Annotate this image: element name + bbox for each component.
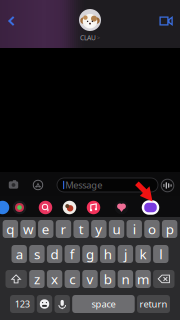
button[interactable]: u: [109, 220, 124, 238]
staticText: return: [139, 298, 167, 310]
staticText: m: [137, 270, 149, 288]
staticText: c: [69, 270, 75, 288]
button[interactable]: Images: [36, 198, 55, 217]
button[interactable]: r: [56, 220, 71, 238]
button[interactable]: Message: [57, 178, 158, 192]
staticText: u: [112, 220, 120, 238]
button[interactable]: c: [65, 270, 80, 288]
button[interactable]: space: [72, 295, 135, 313]
button[interactable]: m: [135, 270, 151, 288]
staticText: g: [86, 245, 94, 263]
button[interactable]: b: [100, 270, 115, 288]
staticText: o: [148, 220, 156, 238]
button[interactable]: t: [73, 220, 89, 238]
button[interactable]: 123: [10, 295, 34, 313]
button[interactable]: y: [91, 220, 106, 238]
staticText: 123: [15, 298, 30, 310]
staticText: a: [16, 245, 23, 263]
staticText: space: [91, 298, 115, 310]
button[interactable]: Emoji: [37, 295, 52, 313]
staticText: h: [104, 245, 112, 263]
staticText: r: [60, 220, 66, 238]
button[interactable]: Memoji: [10, 198, 29, 217]
button[interactable]: Selected app: [142, 200, 159, 215]
button[interactable]: Audio message: [160, 178, 174, 192]
staticText: v: [86, 270, 93, 288]
staticText: x: [51, 270, 58, 288]
button[interactable]: Apps: [33, 180, 43, 190]
staticText: p: [166, 220, 174, 238]
staticText: j: [124, 245, 127, 263]
button[interactable]: e: [38, 220, 53, 238]
button[interactable]: q: [3, 220, 18, 238]
button[interactable]: z: [29, 270, 45, 288]
button[interactable]: x: [47, 270, 62, 288]
staticText: Message: [65, 179, 102, 191]
button[interactable]: CLAU: [60, 9, 120, 42]
staticText: l: [159, 245, 162, 263]
button[interactable]: k: [135, 245, 151, 263]
staticText: k: [140, 245, 147, 263]
staticText: s: [34, 245, 40, 263]
button[interactable]: p: [162, 220, 177, 238]
button[interactable]: a: [11, 245, 27, 263]
button[interactable]: Delete: [153, 270, 174, 288]
button[interactable]: g: [82, 245, 98, 263]
button[interactable]: o: [144, 220, 160, 238]
staticText: >: [97, 34, 100, 41]
staticText: q: [6, 220, 14, 238]
button[interactable]: h: [100, 245, 115, 263]
staticText: y: [95, 220, 102, 238]
button[interactable]: Back: [2, 13, 21, 29]
staticText: i: [133, 220, 136, 238]
staticText: w: [23, 220, 33, 238]
button[interactable]: Camera: [8, 180, 18, 189]
staticText: f: [70, 245, 75, 263]
button[interactable]: n: [118, 270, 133, 288]
staticText: b: [104, 270, 112, 288]
button[interactable]: f: [65, 245, 80, 263]
staticText: z: [34, 270, 40, 288]
button[interactable]: FaceTime: [157, 15, 175, 27]
staticText: e: [42, 220, 50, 238]
button[interactable]: w: [20, 220, 36, 238]
staticText: CLAU: [80, 33, 96, 42]
button[interactable]: Music: [84, 198, 103, 217]
button[interactable]: s: [29, 245, 45, 263]
button[interactable]: Dictate: [54, 295, 70, 313]
button[interactable]: v: [82, 270, 98, 288]
button[interactable]: return: [137, 295, 170, 313]
staticText: t: [79, 220, 84, 238]
button[interactable]: Store: [0, 198, 12, 217]
button[interactable]: d: [47, 245, 62, 263]
button[interactable]: Photos: [60, 198, 79, 217]
staticText: d: [51, 245, 59, 263]
button[interactable]: i: [126, 220, 142, 238]
staticText: n: [121, 270, 129, 288]
button[interactable]: l: [153, 245, 168, 263]
button[interactable]: j: [118, 245, 133, 263]
button[interactable]: Shift: [5, 270, 27, 288]
button[interactable]: Digital Touch: [112, 198, 131, 217]
